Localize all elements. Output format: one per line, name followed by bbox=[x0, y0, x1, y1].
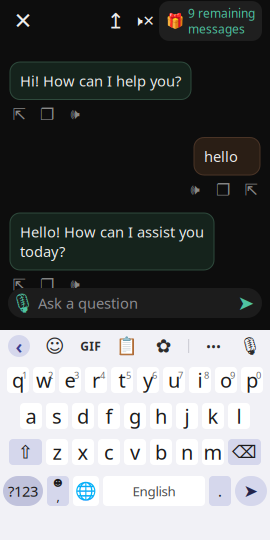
button[interactable]: 🎙 bbox=[8, 288, 262, 318]
button[interactable]: Change language bbox=[73, 476, 99, 506]
button[interactable]: 🎁 bbox=[159, 1, 262, 41]
button[interactable]: Speak bbox=[68, 107, 82, 121]
button[interactable]: l bbox=[228, 403, 250, 429]
staticText: a bbox=[25, 403, 36, 429]
button[interactable]: Share bbox=[12, 278, 26, 292]
button[interactable]: Share bbox=[244, 183, 258, 197]
button[interactable]: g bbox=[124, 403, 146, 429]
staticText: 4 bbox=[100, 369, 105, 381]
staticText: r bbox=[92, 367, 100, 393]
button[interactable]: h bbox=[150, 403, 172, 429]
button[interactable]: Settings bbox=[152, 334, 176, 358]
staticText: ☺ bbox=[45, 335, 64, 357]
button[interactable]: Share bbox=[103, 8, 129, 34]
button[interactable]: p bbox=[241, 367, 263, 393]
staticText: ?123 bbox=[8, 481, 38, 501]
staticText: ✿ bbox=[156, 335, 172, 357]
staticText: 🎁 bbox=[166, 13, 184, 29]
staticText: ☻ bbox=[53, 478, 63, 488]
staticText: 🕪 bbox=[70, 107, 79, 122]
button[interactable]: q bbox=[7, 367, 29, 393]
button[interactable]: Voice input bbox=[238, 334, 262, 358]
staticText: y bbox=[143, 367, 153, 393]
button[interactable]: More bbox=[202, 334, 226, 358]
button[interactable]: w bbox=[33, 367, 55, 393]
button[interactable]: i bbox=[189, 367, 211, 393]
button[interactable]: Back bbox=[8, 335, 30, 357]
staticText: 5 bbox=[126, 369, 131, 381]
button[interactable]: Stickers bbox=[42, 334, 66, 358]
staticText: ⇱ bbox=[244, 181, 257, 199]
button[interactable]: Shift bbox=[9, 439, 42, 465]
button[interactable]: u bbox=[163, 367, 185, 393]
button[interactable]: n bbox=[176, 439, 198, 465]
staticText: w bbox=[36, 367, 52, 393]
staticText: t bbox=[118, 367, 125, 393]
staticText: m bbox=[203, 439, 222, 465]
button[interactable]: Share bbox=[12, 107, 26, 121]
button[interactable]: Speak bbox=[68, 278, 82, 292]
button[interactable]: o bbox=[215, 367, 237, 393]
button[interactable]: Delete bbox=[228, 439, 261, 465]
button[interactable]: ?123 bbox=[3, 476, 43, 506]
staticText: 🕪 bbox=[70, 278, 79, 292]
button[interactable]: GIF bbox=[79, 334, 103, 358]
staticText: GIF bbox=[80, 338, 101, 354]
button[interactable]: Send bbox=[235, 476, 267, 506]
button[interactable]: r bbox=[85, 367, 107, 393]
staticText: ⇱ bbox=[12, 105, 25, 124]
staticText: f bbox=[105, 403, 112, 429]
button[interactable]: English bbox=[103, 476, 205, 506]
button[interactable]: k bbox=[202, 403, 224, 429]
button[interactable]: x bbox=[72, 439, 94, 465]
staticText: e bbox=[64, 367, 75, 393]
button[interactable]: j bbox=[176, 403, 198, 429]
staticText: j bbox=[184, 403, 189, 429]
button[interactable]: Copy bbox=[40, 107, 54, 121]
button[interactable]: b bbox=[150, 439, 172, 465]
button[interactable]: Emoji and comma bbox=[47, 476, 69, 506]
button[interactable]: Clipboard bbox=[115, 334, 139, 358]
button[interactable]: s bbox=[46, 403, 68, 429]
staticText: q bbox=[12, 367, 24, 393]
button[interactable]: e bbox=[59, 367, 81, 393]
staticText: ⌫ bbox=[232, 442, 257, 462]
button[interactable]: Copy bbox=[216, 183, 230, 197]
button[interactable]: c bbox=[98, 439, 120, 465]
button[interactable]: Period bbox=[209, 476, 231, 506]
staticText: 2 bbox=[48, 369, 53, 381]
button[interactable]: a bbox=[20, 403, 42, 429]
button[interactable]: Copy bbox=[40, 278, 54, 292]
button[interactable]: y bbox=[137, 367, 159, 393]
staticText: u bbox=[168, 367, 180, 393]
button[interactable]: t bbox=[111, 367, 133, 393]
staticText: b bbox=[155, 439, 167, 465]
button[interactable]: v bbox=[124, 439, 146, 465]
button[interactable]: d bbox=[72, 403, 94, 429]
staticText: ❐ bbox=[216, 181, 230, 199]
staticText: 3 bbox=[74, 369, 79, 381]
staticText: 🎙 bbox=[239, 336, 261, 356]
staticText: x bbox=[77, 439, 88, 465]
staticText: 🕪 bbox=[190, 183, 199, 197]
staticText: s bbox=[52, 403, 62, 429]
staticText: Hello! How can I assist you today? bbox=[20, 222, 204, 261]
staticText: d bbox=[77, 403, 89, 429]
button[interactable]: Speak bbox=[188, 183, 202, 197]
button[interactable]: Close bbox=[8, 6, 38, 36]
button[interactable]: Mute bbox=[129, 8, 159, 34]
staticText: ⇱ bbox=[12, 276, 25, 294]
staticText: ❐ bbox=[40, 276, 54, 294]
staticText: i bbox=[197, 367, 202, 393]
button[interactable]: f bbox=[98, 403, 120, 429]
staticText: n bbox=[181, 439, 193, 465]
staticText: ‹ bbox=[15, 333, 22, 359]
staticText: ➤ bbox=[237, 292, 254, 314]
button[interactable]: m bbox=[202, 439, 224, 465]
staticText: 🎙 bbox=[11, 292, 35, 314]
staticText: 🕨✕ bbox=[133, 13, 154, 29]
staticText: 6 bbox=[152, 369, 157, 381]
staticText: v bbox=[130, 439, 140, 465]
staticText: ↥ bbox=[107, 9, 125, 33]
button[interactable]: z bbox=[46, 439, 68, 465]
